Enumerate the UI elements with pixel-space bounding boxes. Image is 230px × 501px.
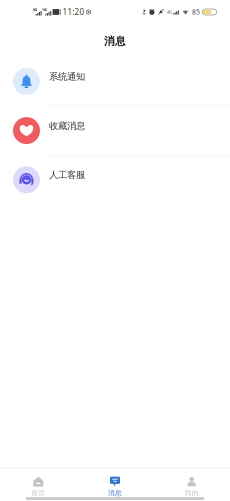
staticText: 11:20 [62, 7, 84, 17]
button[interactable]: 我的 [153, 477, 230, 497]
button[interactable]: 系统通知 [0, 57, 230, 106]
staticText: 消息 [108, 489, 122, 497]
staticText: 收藏消息 [49, 120, 85, 132]
staticText: 85 [192, 8, 200, 16]
staticText: 系统通知 [49, 71, 85, 82]
button[interactable]: 人工客服 [0, 156, 230, 204]
staticText: 人工客服 [49, 169, 85, 181]
staticText: 4G [167, 9, 172, 15]
button[interactable]: 消息 [77, 477, 153, 497]
button[interactable]: 收藏消息 [0, 106, 230, 156]
staticText: 我的 [185, 489, 199, 497]
staticText: 首页 [31, 489, 45, 497]
button[interactable]: 首页 [0, 477, 77, 497]
staticText: 消息 [104, 35, 126, 48]
